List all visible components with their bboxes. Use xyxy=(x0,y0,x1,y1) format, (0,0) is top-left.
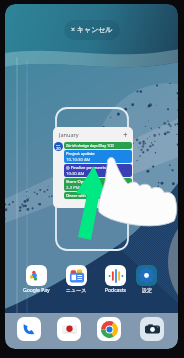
button[interactable]: Google Pay xyxy=(22,265,51,294)
staticText: Store Opening xyxy=(66,179,95,185)
button[interactable]: Project update xyxy=(64,150,132,163)
staticText: ◎ Finalize payments xyxy=(66,165,106,171)
staticText: Dinner with Tom xyxy=(66,193,94,198)
button[interactable]: Podcasts xyxy=(101,265,130,294)
staticText: January xyxy=(59,131,79,138)
staticText: 20 xyxy=(56,146,61,151)
button[interactable]: × キャンセル xyxy=(64,20,120,40)
staticText: 10:30 AM xyxy=(66,171,85,177)
staticText: 10-10:30 AM xyxy=(66,157,91,163)
staticText: + xyxy=(123,129,128,140)
button[interactable]: Chrome xyxy=(97,317,121,341)
button[interactable]: ◎ Finalize payments xyxy=(64,164,132,177)
button[interactable]: Store Opening xyxy=(64,178,132,191)
staticText: ニュース xyxy=(66,287,87,293)
button[interactable]: Dinner with Tom xyxy=(64,192,132,199)
button[interactable]: ニュース xyxy=(62,265,91,293)
button[interactable]: Camera xyxy=(140,317,164,341)
staticText: SAT xyxy=(56,143,61,146)
staticText: Google Pay xyxy=(23,287,50,294)
button[interactable]: Zürich design days (Day 1/2) xyxy=(64,142,132,149)
staticText: 設定 xyxy=(142,287,152,293)
staticText: × キャンセル xyxy=(71,25,113,35)
staticText: 2-3 PM xyxy=(66,185,80,191)
button[interactable]: Phone xyxy=(17,317,41,341)
staticText: Podcasts xyxy=(105,287,126,294)
button[interactable]: Wallet xyxy=(57,317,81,341)
staticText: Zürich design days (Day 1/2) xyxy=(66,143,114,148)
button[interactable]: 設定 xyxy=(132,265,161,293)
staticText: Project update xyxy=(66,151,95,157)
